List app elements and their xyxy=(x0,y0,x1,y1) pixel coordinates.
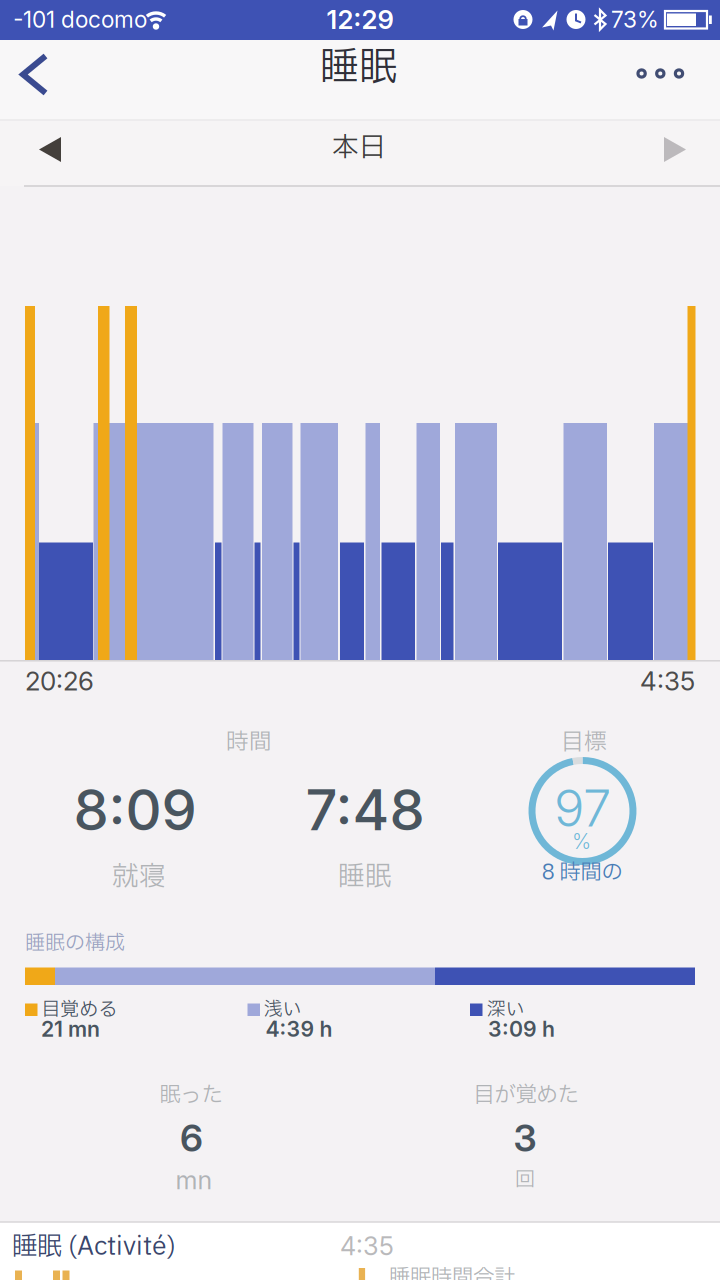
staticText: 21 mn xyxy=(41,1016,100,1042)
staticText: mn xyxy=(175,1165,212,1195)
staticText: 4:35 xyxy=(340,1231,394,1261)
staticText: 73% xyxy=(611,6,659,33)
staticText: -101 docomo xyxy=(13,6,147,33)
staticText: 4:35 xyxy=(640,665,695,697)
staticText: 目覚める xyxy=(41,996,117,1024)
staticText: 眠った xyxy=(159,1079,222,1111)
staticText: 睡眠 xyxy=(320,39,398,97)
staticText: 睡眠時間合計 xyxy=(389,1262,515,1280)
button[interactable] xyxy=(640,120,700,180)
button[interactable] xyxy=(0,40,76,120)
staticText: 睡眠の構成 xyxy=(25,928,125,958)
staticText: 目標 xyxy=(561,725,607,759)
button[interactable] xyxy=(622,40,702,120)
staticText: 6 xyxy=(180,1115,203,1161)
staticText: 就寝 xyxy=(112,857,166,897)
staticText: 20:26 xyxy=(25,665,94,697)
staticText: 4:39 h xyxy=(265,1016,332,1042)
staticText: 8 時間の xyxy=(541,857,622,889)
staticText: 8:09 xyxy=(73,776,196,844)
staticText: 睡眠 xyxy=(338,857,392,897)
button[interactable]: 睡眠 (Activité) xyxy=(0,1222,720,1280)
staticText: 7:48 xyxy=(305,776,424,844)
staticText: 時間 xyxy=(226,725,272,759)
staticText: 目が覚めた xyxy=(473,1079,578,1111)
staticText: 12:29 xyxy=(326,4,393,35)
staticText: % xyxy=(572,829,591,854)
staticText: 97 xyxy=(554,777,611,839)
button[interactable] xyxy=(20,120,80,180)
staticText: 本日 xyxy=(332,128,386,168)
staticText: 睡眠 (Activité) xyxy=(12,1228,176,1266)
staticText: 3 xyxy=(513,1115,536,1161)
staticText: 3:09 h xyxy=(488,1016,555,1042)
staticText: 浅い xyxy=(264,996,302,1024)
staticText: 回 xyxy=(515,1165,535,1195)
staticText: 深い xyxy=(487,996,525,1024)
